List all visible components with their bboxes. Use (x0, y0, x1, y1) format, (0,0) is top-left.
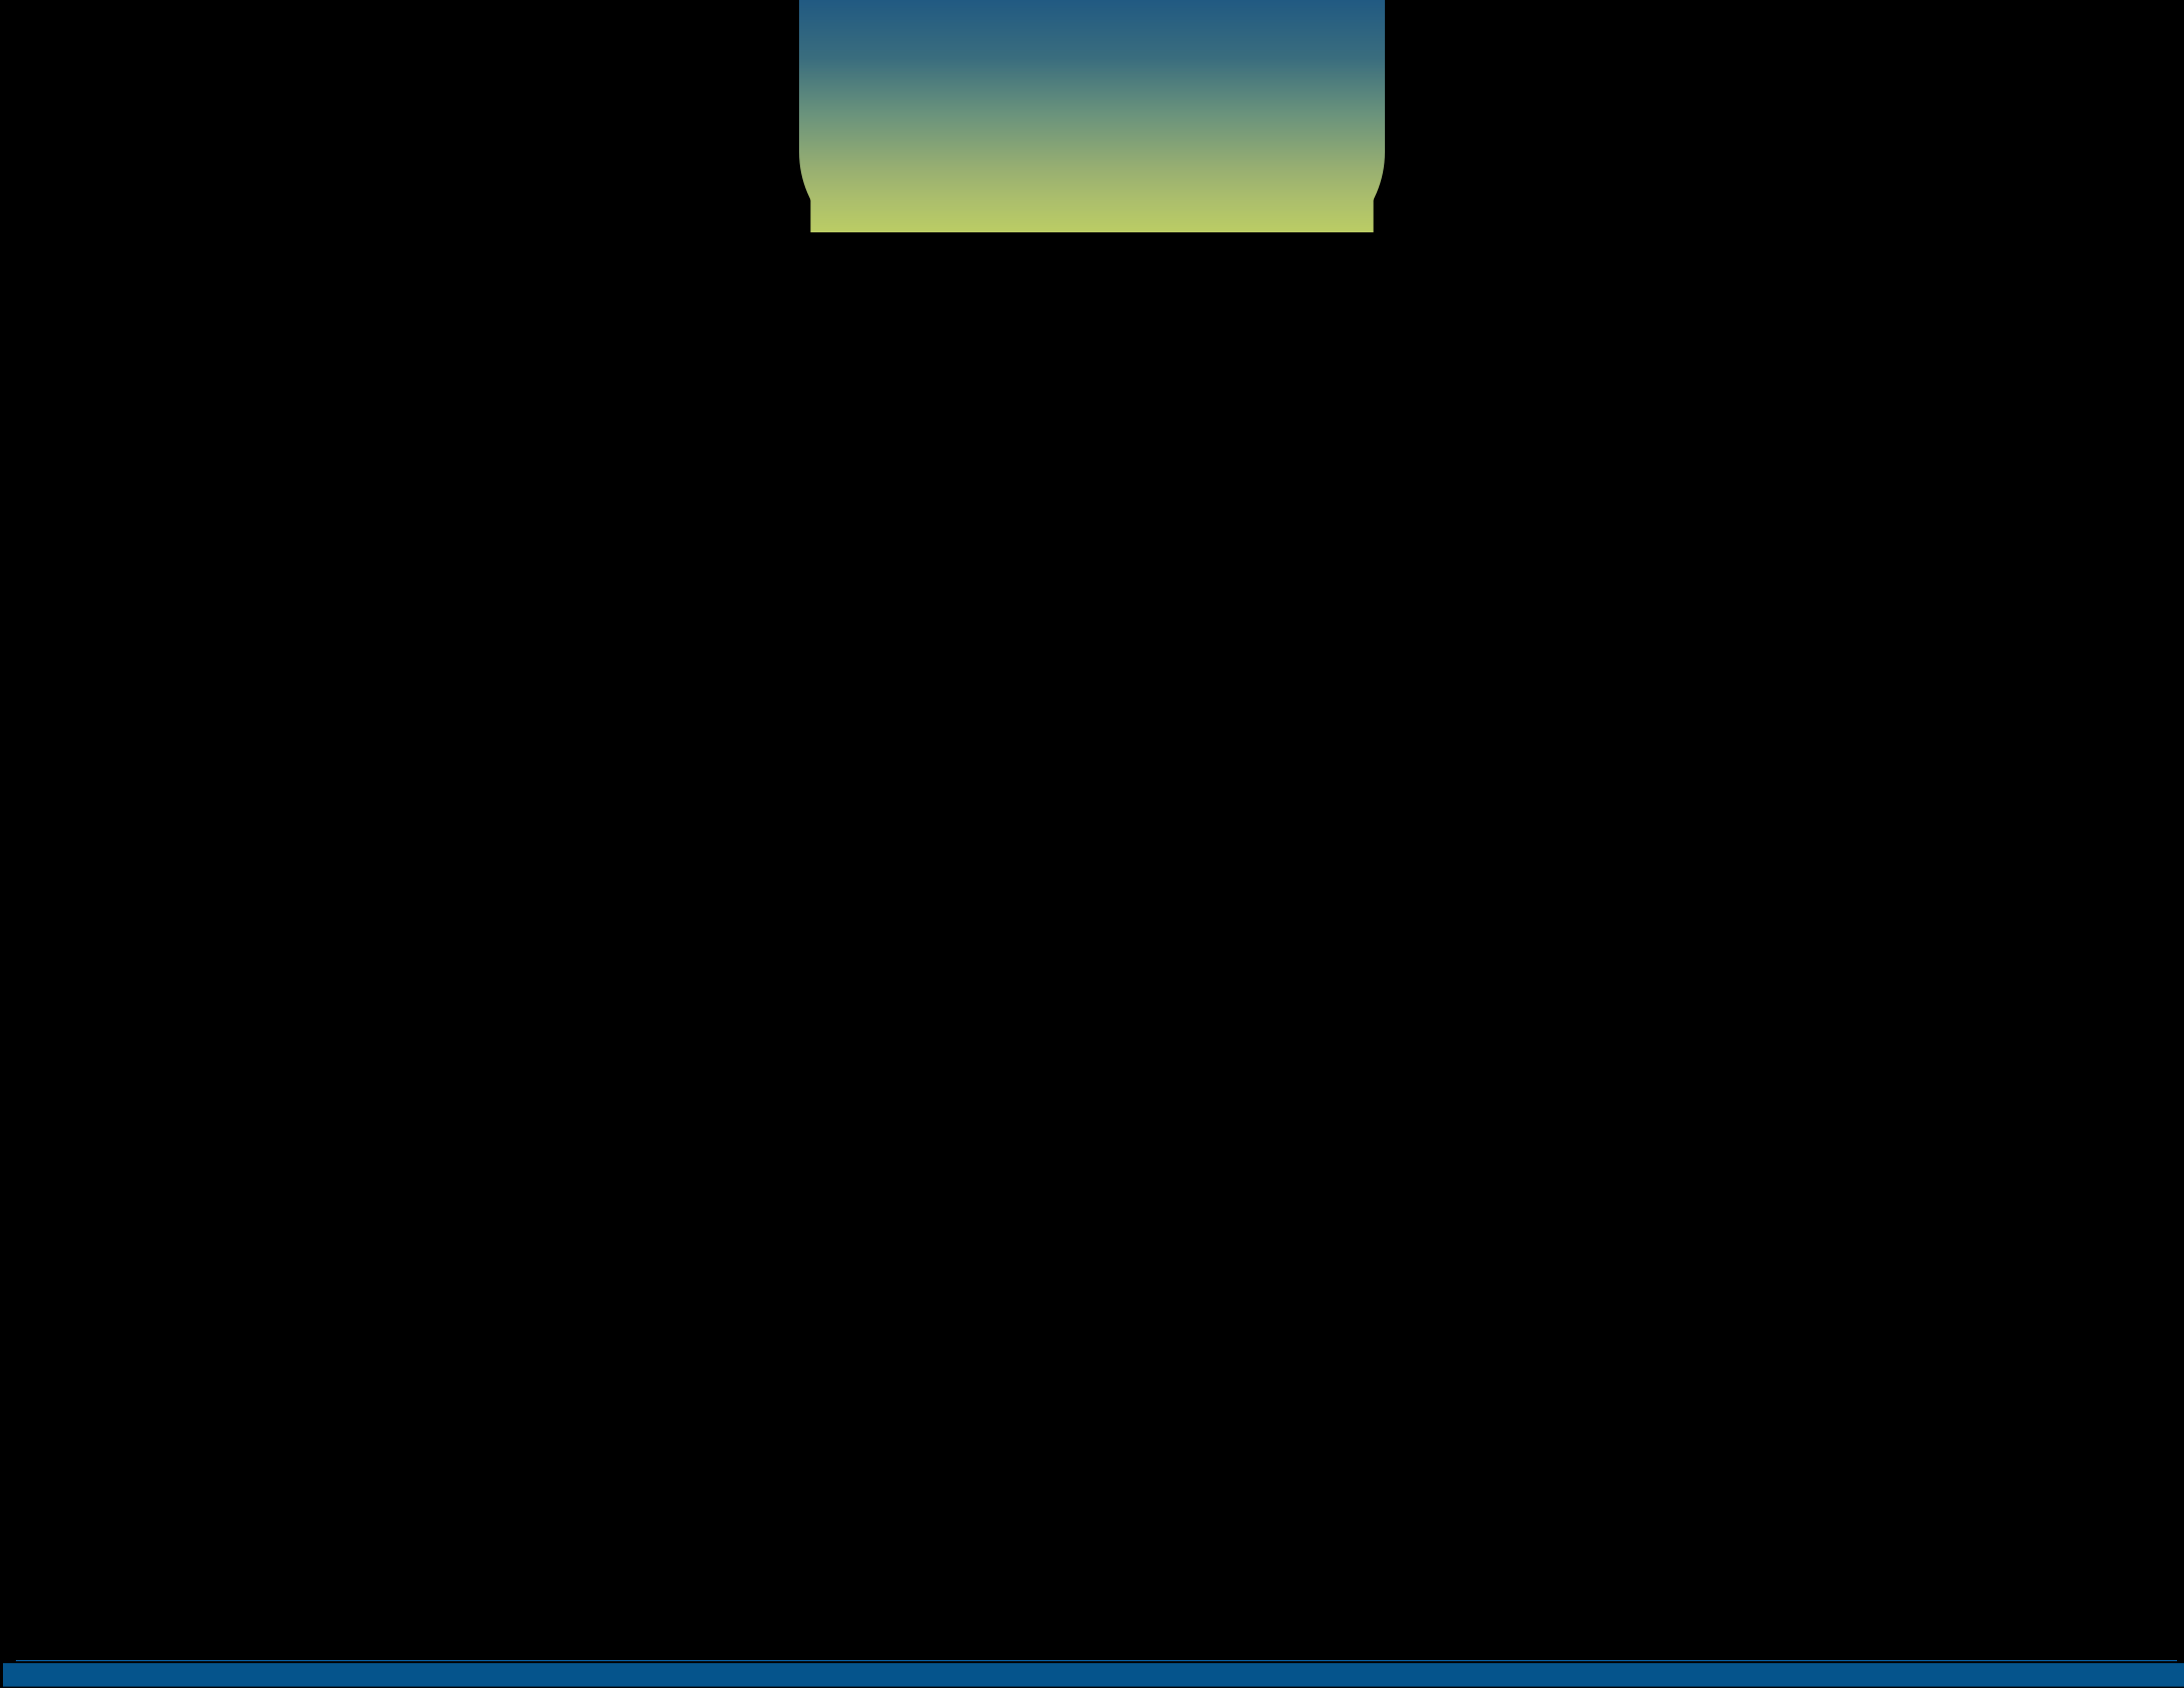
button[interactable]: Now playing (0, 1660, 2184, 1688)
button[interactable]: Album artwork (799, 0, 1385, 232)
